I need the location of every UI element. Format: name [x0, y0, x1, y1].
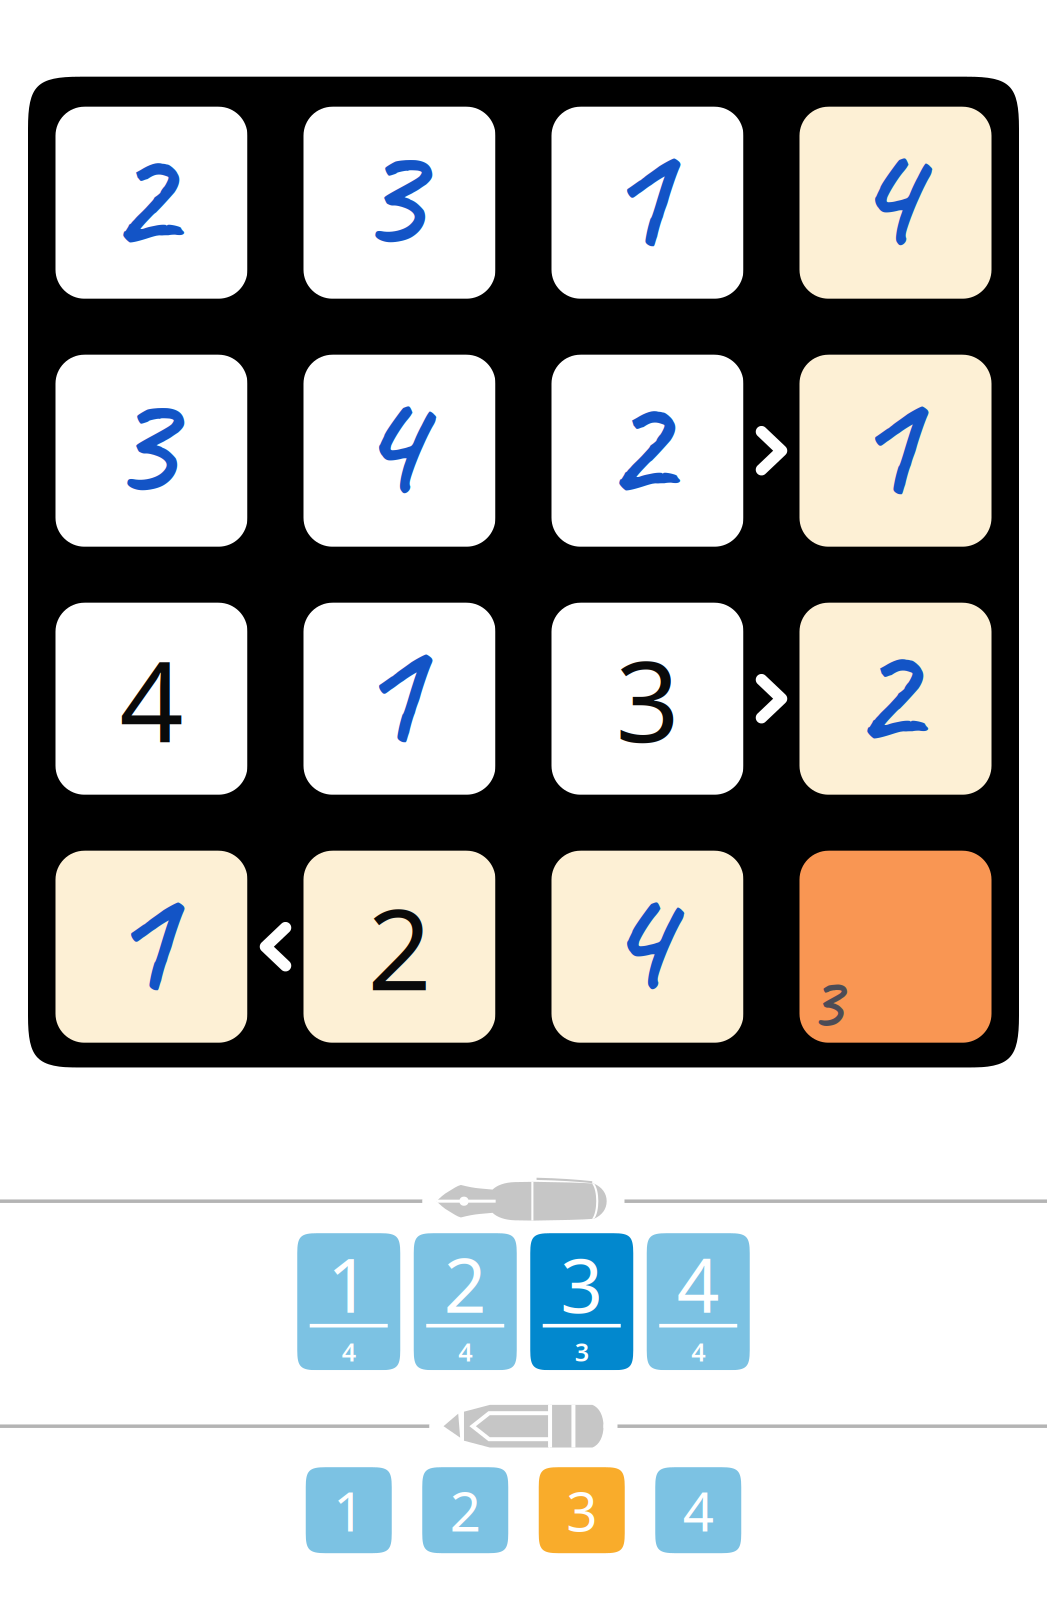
button[interactable]: 2: [407, 1233, 523, 1370]
button[interactable]: 2: [551, 355, 743, 547]
button[interactable]: 4: [303, 355, 495, 547]
staticText: 4: [119, 624, 183, 773]
button[interactable]: 2: [799, 603, 991, 795]
button[interactable]: 1: [303, 603, 495, 795]
button[interactable]: 3: [523, 1467, 640, 1553]
staticText: 1: [601, 97, 670, 290]
staticText: 3: [575, 1335, 589, 1368]
staticText: 2: [601, 345, 670, 538]
staticText: 3: [566, 1474, 597, 1546]
staticText: 2: [105, 97, 174, 290]
button[interactable]: 3: [55, 355, 247, 547]
staticText: 4: [691, 1335, 705, 1368]
button[interactable]: 3: [551, 603, 743, 795]
staticText: 4: [601, 841, 670, 1034]
button[interactable]: 3: [303, 107, 495, 299]
button[interactable]: 4: [55, 603, 247, 795]
staticText: 3: [353, 97, 422, 290]
button[interactable]: 4: [640, 1467, 756, 1553]
staticText: 4: [458, 1335, 472, 1368]
staticText: 4: [683, 1474, 714, 1546]
button[interactable]: 3: [523, 1233, 640, 1370]
button[interactable]: 1: [551, 107, 743, 299]
staticText: 2: [849, 593, 918, 786]
staticText: 1: [105, 841, 174, 1034]
button[interactable]: 2: [407, 1467, 523, 1553]
button[interactable]: 2: [303, 851, 495, 1043]
button[interactable]: 4: [640, 1233, 756, 1370]
button[interactable]: 3: [799, 851, 991, 1043]
button[interactable]: 1: [290, 1467, 407, 1553]
staticText: 3: [560, 1234, 603, 1333]
staticText: 1: [353, 593, 422, 786]
staticText: 3: [615, 624, 679, 773]
staticText: 3: [105, 345, 174, 538]
staticText: 3: [807, 954, 841, 1050]
staticText: 2: [450, 1474, 481, 1546]
staticText: 1: [327, 1234, 370, 1333]
button[interactable]: 1: [290, 1233, 407, 1370]
staticText: 4: [677, 1234, 720, 1333]
button[interactable]: 2: [55, 107, 247, 299]
staticText: 1: [333, 1474, 364, 1546]
staticText: 2: [367, 872, 431, 1021]
button[interactable]: 1: [799, 355, 991, 547]
staticText: 4: [342, 1335, 356, 1368]
button[interactable]: 4: [551, 851, 743, 1043]
button[interactable]: 4: [799, 107, 991, 299]
button[interactable]: 1: [55, 851, 247, 1043]
staticText: 1: [849, 345, 918, 538]
staticText: 2: [444, 1234, 487, 1333]
staticText: 4: [849, 97, 918, 290]
staticText: 4: [353, 345, 422, 538]
